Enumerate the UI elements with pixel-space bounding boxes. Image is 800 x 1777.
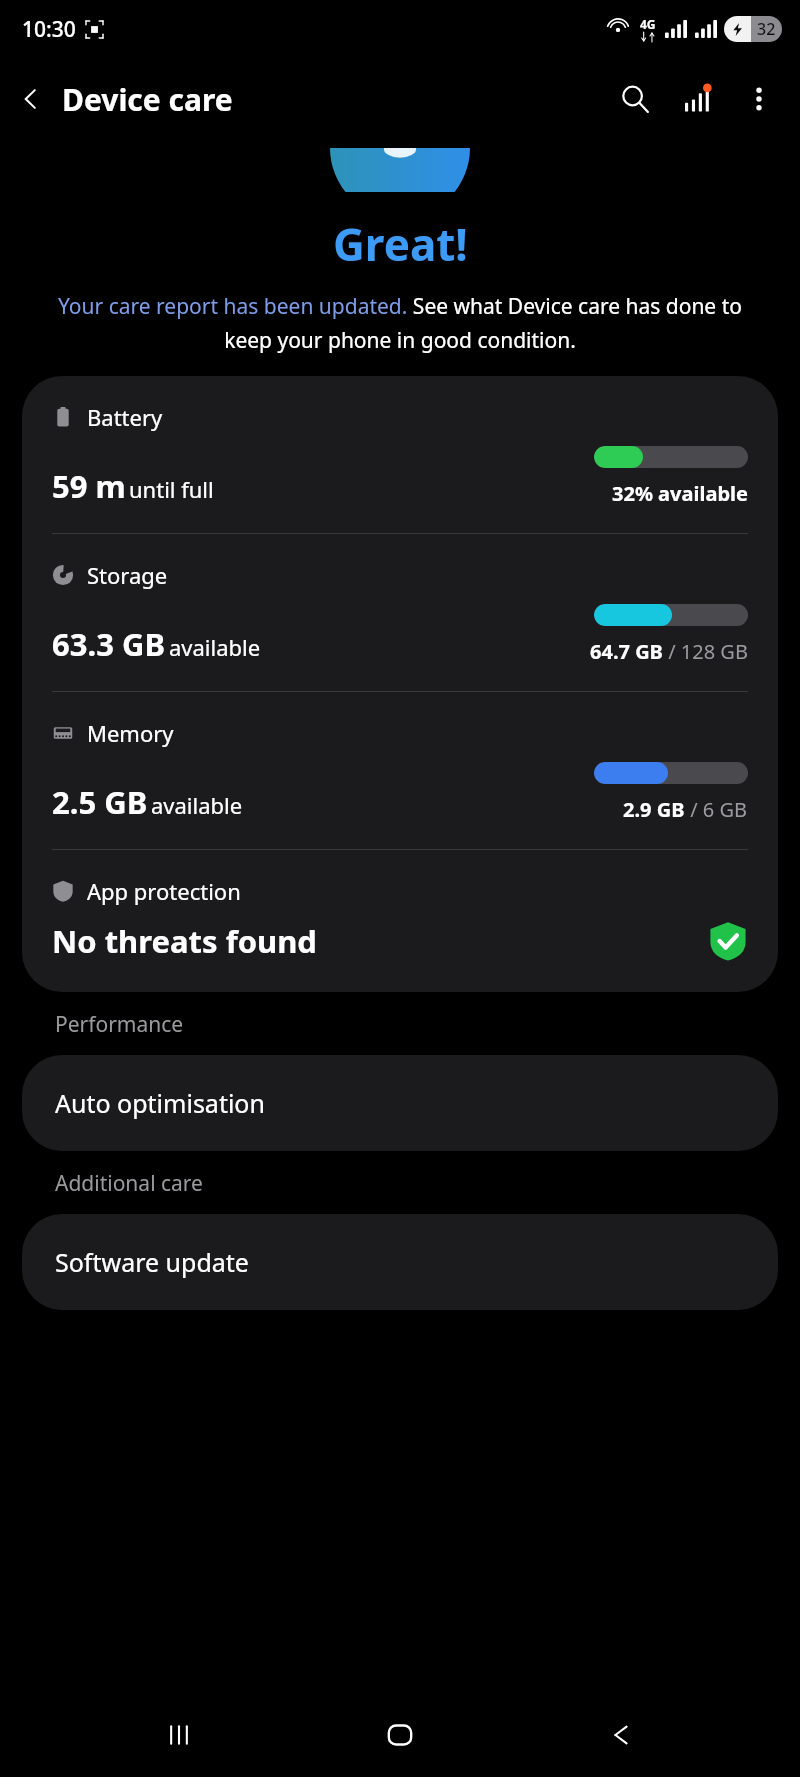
button[interactable]: App protection [22,850,778,992]
staticText: available [151,790,243,820]
button[interactable]: Search [604,68,666,130]
staticText: available [169,632,261,662]
staticText: 4G [640,16,656,32]
staticText: / 128 GB [663,638,748,665]
button[interactable]: More options [728,68,790,130]
staticText: Storage [87,560,168,590]
staticText: 10:30 [22,15,76,44]
staticText: Additional care [55,1169,203,1198]
button[interactable]: Battery [22,376,778,533]
button[interactable]: Recent apps [137,1693,221,1777]
staticText: 64.7 GB [590,638,663,665]
staticText: Device care [62,79,233,120]
button[interactable]: Software update [22,1214,778,1310]
button[interactable]: Back [579,1693,663,1777]
staticText: Battery [87,402,163,432]
button[interactable]: Back [0,68,62,130]
staticText: Great! [333,214,468,274]
staticText: 32 [757,18,776,40]
staticText: Software update [55,1245,249,1279]
staticText: until full [129,474,214,504]
staticText: Performance [55,1010,184,1039]
button[interactable]: Auto optimisation [22,1055,778,1151]
staticText: Your care report has been updated. See w… [40,292,760,354]
button[interactable]: Home [358,1693,442,1777]
button[interactable]: Usage statistics [666,68,728,130]
staticText: Auto optimisation [55,1086,265,1120]
staticText: 2.5 GB [52,781,148,823]
staticText: App protection [87,876,241,906]
button[interactable]: Memory [22,692,778,849]
staticText: / 6 GB [685,796,748,823]
staticText: 63.3 GB [52,623,166,665]
staticText: 59 m [52,465,126,507]
staticText: No threats found [52,920,317,962]
button[interactable]: Storage [22,534,778,691]
staticText: 32% available [612,480,748,507]
staticText: Memory [87,718,174,748]
staticText: 2.9 GB [623,796,685,823]
